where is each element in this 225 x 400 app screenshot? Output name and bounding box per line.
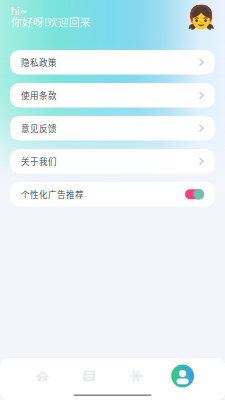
staticText: 个性化广告推荐 [21,188,84,200]
button[interactable]: 我的 [159,363,206,389]
button[interactable]: 发现 [112,363,159,389]
staticText: 👧 [187,4,215,30]
button[interactable]: 首页 [19,363,66,389]
button[interactable]: 订单 [66,363,113,389]
button[interactable]: 关于我们 [10,149,215,173]
staticText: 使用条款 [21,89,57,101]
button[interactable]: 使用条款 [10,83,215,107]
staticText: 意见反馈 [21,122,57,134]
staticText: 你好呀!欢迎回来 [11,14,91,29]
button[interactable]: 意见反馈 [10,116,215,140]
button[interactable]: 个性化广告推荐 [10,182,215,206]
staticText: 隐私政策 [21,56,57,68]
staticText: hi~ [11,4,27,17]
staticText: 关于我们 [21,155,57,167]
button[interactable]: 隐私政策 [10,50,215,74]
